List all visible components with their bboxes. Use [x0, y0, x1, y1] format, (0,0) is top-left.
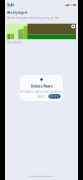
staticText: Delete: [49, 95, 59, 98]
staticText: Weekly digest: [7, 11, 27, 14]
button[interactable]: Cancel: [35, 94, 47, 99]
button[interactable]: Close advert: [70, 24, 76, 29]
staticText: Delete Note: [30, 83, 52, 89]
staticText: Here's how your week is going so far: [7, 16, 58, 20]
staticText: Sponsored: [7, 41, 22, 44]
button[interactable]: Delete: [48, 94, 60, 99]
staticText: 9:41: [7, 2, 14, 8]
staticText: This action cannot be undone.: [20, 90, 63, 94]
staticText: Cancel: [36, 95, 45, 98]
